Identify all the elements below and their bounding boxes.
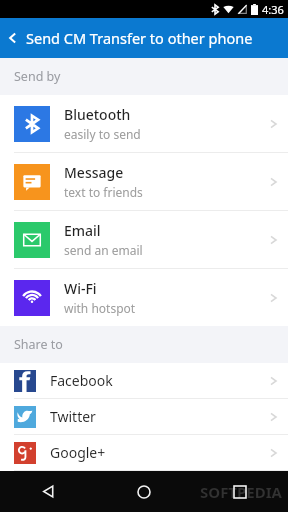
- button[interactable]: Wi-Fi: [0, 269, 288, 326]
- button[interactable]: Email: [0, 211, 288, 268]
- staticText: Message: [64, 163, 124, 182]
- staticText: Send by: [14, 68, 61, 85]
- button[interactable]: Back: [0, 471, 96, 512]
- staticText: SOFTPEDIA: [200, 482, 282, 502]
- staticText: Wi-Fi: [64, 279, 97, 298]
- staticText: Bluetooth: [64, 105, 131, 124]
- staticText: Twitter: [50, 407, 96, 426]
- staticText: Send CM Transfer to other phone: [26, 28, 253, 48]
- staticText: Facebook: [50, 371, 113, 390]
- button[interactable]: Twitter: [0, 399, 288, 434]
- button[interactable]: Google+: [0, 435, 288, 470]
- button[interactable]: Bluetooth: [0, 95, 288, 152]
- staticText: Share to: [14, 336, 63, 353]
- staticText: with hotspot: [64, 300, 136, 316]
- button[interactable]: Recent apps: [192, 471, 288, 512]
- button[interactable]: Message: [0, 153, 288, 210]
- button[interactable]: Facebook: [0, 363, 288, 398]
- staticText: easily to send: [64, 126, 141, 142]
- staticText: 4:36: [262, 2, 284, 17]
- staticText: text to friends: [64, 184, 143, 200]
- button[interactable]: Back: [0, 18, 26, 58]
- staticText: Google+: [50, 443, 106, 462]
- staticText: send an email: [64, 242, 143, 258]
- staticText: Email: [64, 221, 101, 240]
- button[interactable]: Home: [96, 471, 192, 512]
